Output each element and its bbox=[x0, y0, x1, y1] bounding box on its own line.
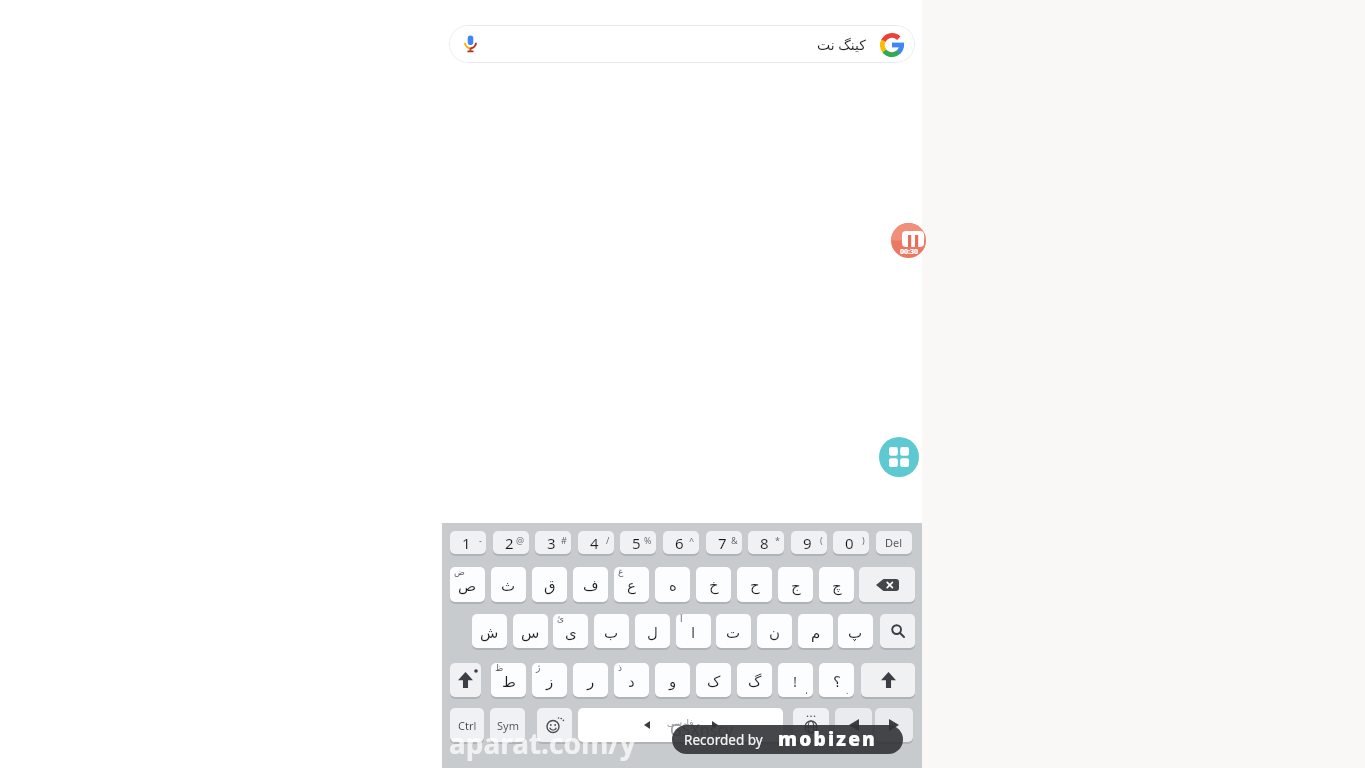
staticText: ف bbox=[583, 577, 599, 594]
button[interactable]: Ctrl bbox=[450, 708, 484, 742]
button[interactable]: 9 bbox=[791, 531, 827, 554]
staticText: ^ bbox=[689, 534, 695, 546]
button[interactable]: ف bbox=[573, 567, 608, 602]
staticText: ! bbox=[793, 671, 798, 691]
staticText: خ bbox=[709, 577, 719, 594]
staticText: ؟ bbox=[833, 673, 841, 690]
button[interactable]: ؟ bbox=[819, 663, 854, 697]
staticText: ( bbox=[820, 534, 823, 546]
staticText: ث bbox=[501, 577, 516, 594]
staticText: ئ bbox=[557, 614, 565, 624]
staticText: ظ bbox=[495, 663, 504, 673]
staticText: ش bbox=[480, 624, 499, 641]
staticText: ر bbox=[587, 673, 595, 690]
button[interactable]: ل bbox=[635, 614, 670, 648]
button[interactable]: س bbox=[513, 614, 548, 648]
staticText: م bbox=[811, 624, 821, 641]
button[interactable]: ز bbox=[532, 663, 567, 697]
button[interactable]: ت bbox=[716, 614, 751, 648]
button[interactable]: پ bbox=[838, 614, 873, 648]
staticText: ص bbox=[458, 577, 477, 594]
staticText: ط bbox=[502, 673, 516, 690]
staticText: ق bbox=[544, 577, 556, 594]
staticText: ح bbox=[750, 577, 760, 594]
staticText: ن bbox=[769, 624, 781, 641]
button[interactable]: ر bbox=[573, 663, 608, 697]
button[interactable] bbox=[880, 614, 915, 648]
staticText: 8 bbox=[760, 533, 769, 553]
staticText: ب bbox=[604, 624, 619, 641]
staticText: Ctrl bbox=[458, 718, 477, 733]
staticText: ز bbox=[546, 673, 554, 690]
button[interactable]: گ bbox=[737, 663, 772, 697]
button[interactable]: فارسی bbox=[578, 708, 783, 742]
button[interactable] bbox=[835, 708, 872, 742]
button[interactable]: ع bbox=[614, 567, 649, 602]
staticText: ، bbox=[805, 686, 808, 696]
button[interactable]: ب bbox=[594, 614, 629, 648]
staticText: د bbox=[628, 673, 635, 690]
button[interactable]: 00:30 bbox=[891, 223, 926, 258]
staticText: aparat.com/y bbox=[449, 724, 636, 762]
staticText: س bbox=[521, 624, 540, 641]
staticText: فارسی bbox=[667, 718, 694, 728]
staticText: کینگ نت bbox=[817, 35, 866, 54]
button[interactable]: ا bbox=[676, 614, 711, 648]
button[interactable] bbox=[879, 437, 919, 477]
button[interactable]: ج bbox=[778, 567, 813, 602]
button[interactable] bbox=[449, 25, 915, 63]
button[interactable]: Del bbox=[876, 531, 912, 554]
staticText: 6 bbox=[675, 533, 684, 553]
button[interactable]: د bbox=[614, 663, 649, 697]
staticText: Recorded by bbox=[684, 731, 763, 749]
button[interactable]: 4 bbox=[578, 531, 614, 554]
staticText: ض bbox=[454, 567, 465, 577]
button[interactable]: ح bbox=[737, 567, 772, 602]
button[interactable]: ! bbox=[778, 663, 813, 697]
button[interactable] bbox=[793, 708, 829, 742]
staticText: ا bbox=[691, 624, 696, 641]
button[interactable]: ص bbox=[450, 567, 485, 602]
button[interactable]: ق bbox=[532, 567, 567, 602]
staticText: @ bbox=[516, 534, 525, 546]
button[interactable]: ک bbox=[696, 663, 731, 697]
staticText: 1 bbox=[462, 533, 471, 553]
staticText: ) bbox=[862, 534, 865, 546]
button[interactable]: خ bbox=[696, 567, 731, 602]
staticText: غ bbox=[618, 567, 624, 577]
staticText: 5 bbox=[632, 533, 641, 553]
button[interactable]: 7 bbox=[706, 531, 742, 554]
button[interactable]: ی bbox=[553, 614, 588, 648]
staticText: 00:30 bbox=[900, 247, 918, 257]
button[interactable]: 5 bbox=[620, 531, 656, 554]
button[interactable]: 3 bbox=[535, 531, 571, 554]
button[interactable]: ط bbox=[491, 663, 526, 697]
button[interactable] bbox=[861, 663, 915, 697]
button[interactable]: 2 bbox=[493, 531, 529, 554]
staticText: و bbox=[669, 673, 677, 690]
staticText: Sym bbox=[497, 718, 519, 733]
staticText: آ bbox=[680, 614, 683, 624]
button[interactable]: ه bbox=[655, 567, 690, 602]
button[interactable] bbox=[859, 567, 915, 602]
button[interactable]: 1 bbox=[450, 531, 486, 554]
button[interactable]: و bbox=[655, 663, 690, 697]
button[interactable]: Sym bbox=[490, 708, 525, 742]
staticText: پ bbox=[848, 624, 863, 641]
button[interactable]: 8 bbox=[748, 531, 784, 554]
button[interactable]: ن bbox=[757, 614, 792, 648]
staticText: * bbox=[775, 534, 780, 546]
staticText: 0 bbox=[845, 533, 854, 553]
button[interactable]: چ bbox=[819, 567, 854, 602]
button[interactable] bbox=[537, 708, 572, 742]
staticText: - bbox=[479, 534, 482, 546]
button[interactable]: م bbox=[798, 614, 833, 648]
button[interactable]: 6 bbox=[663, 531, 699, 554]
staticText: گ bbox=[748, 673, 762, 690]
button[interactable]: ش bbox=[472, 614, 507, 648]
button[interactable] bbox=[875, 708, 913, 742]
staticText: 4 bbox=[590, 533, 599, 553]
button[interactable] bbox=[450, 663, 481, 697]
button[interactable]: ث bbox=[491, 567, 526, 602]
button[interactable]: 0 bbox=[833, 531, 869, 554]
